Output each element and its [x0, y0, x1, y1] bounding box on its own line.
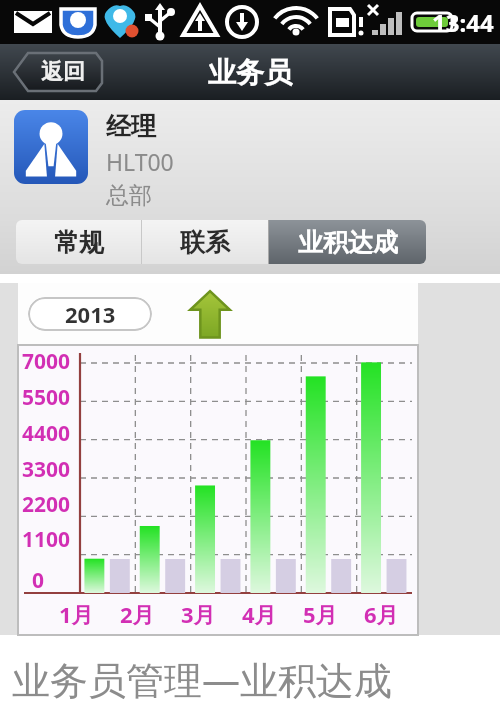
button[interactable]: 业积达成	[269, 220, 426, 264]
button[interactable]: 返回	[14, 53, 102, 91]
staticText: 0	[32, 566, 45, 595]
staticText: 5500	[22, 383, 71, 412]
staticText: 2200	[22, 490, 71, 519]
button[interactable]: 联系	[142, 220, 268, 264]
staticText: 总部	[106, 181, 152, 210]
staticText: 4400	[22, 419, 71, 448]
button[interactable]: 上升	[188, 288, 232, 340]
staticText: 7000	[22, 347, 71, 376]
staticText: 1100	[22, 525, 71, 554]
staticText: 5月	[303, 599, 338, 629]
staticText: 常规	[54, 227, 104, 258]
staticText: 业积达成	[298, 227, 398, 258]
staticText: 3月	[181, 599, 216, 629]
staticText: 1月	[59, 599, 94, 629]
staticText: 2月	[120, 599, 155, 629]
staticText: 业务员	[208, 55, 292, 90]
button[interactable]: 常规	[16, 220, 141, 264]
staticText: 返回	[41, 58, 85, 86]
staticText: 2013	[65, 299, 116, 329]
staticText: HLT00	[106, 146, 174, 177]
staticText: 3300	[22, 455, 71, 484]
button[interactable]: 2013	[28, 297, 152, 331]
staticText: 联系	[180, 227, 230, 258]
staticText: 13:44	[432, 6, 494, 39]
button[interactable]: 头像	[14, 110, 88, 184]
staticText: 经理	[106, 111, 156, 142]
staticText: 业务员管理—业积达成	[12, 653, 393, 705]
staticText: 6月	[364, 599, 399, 629]
staticText: 4月	[242, 599, 277, 629]
